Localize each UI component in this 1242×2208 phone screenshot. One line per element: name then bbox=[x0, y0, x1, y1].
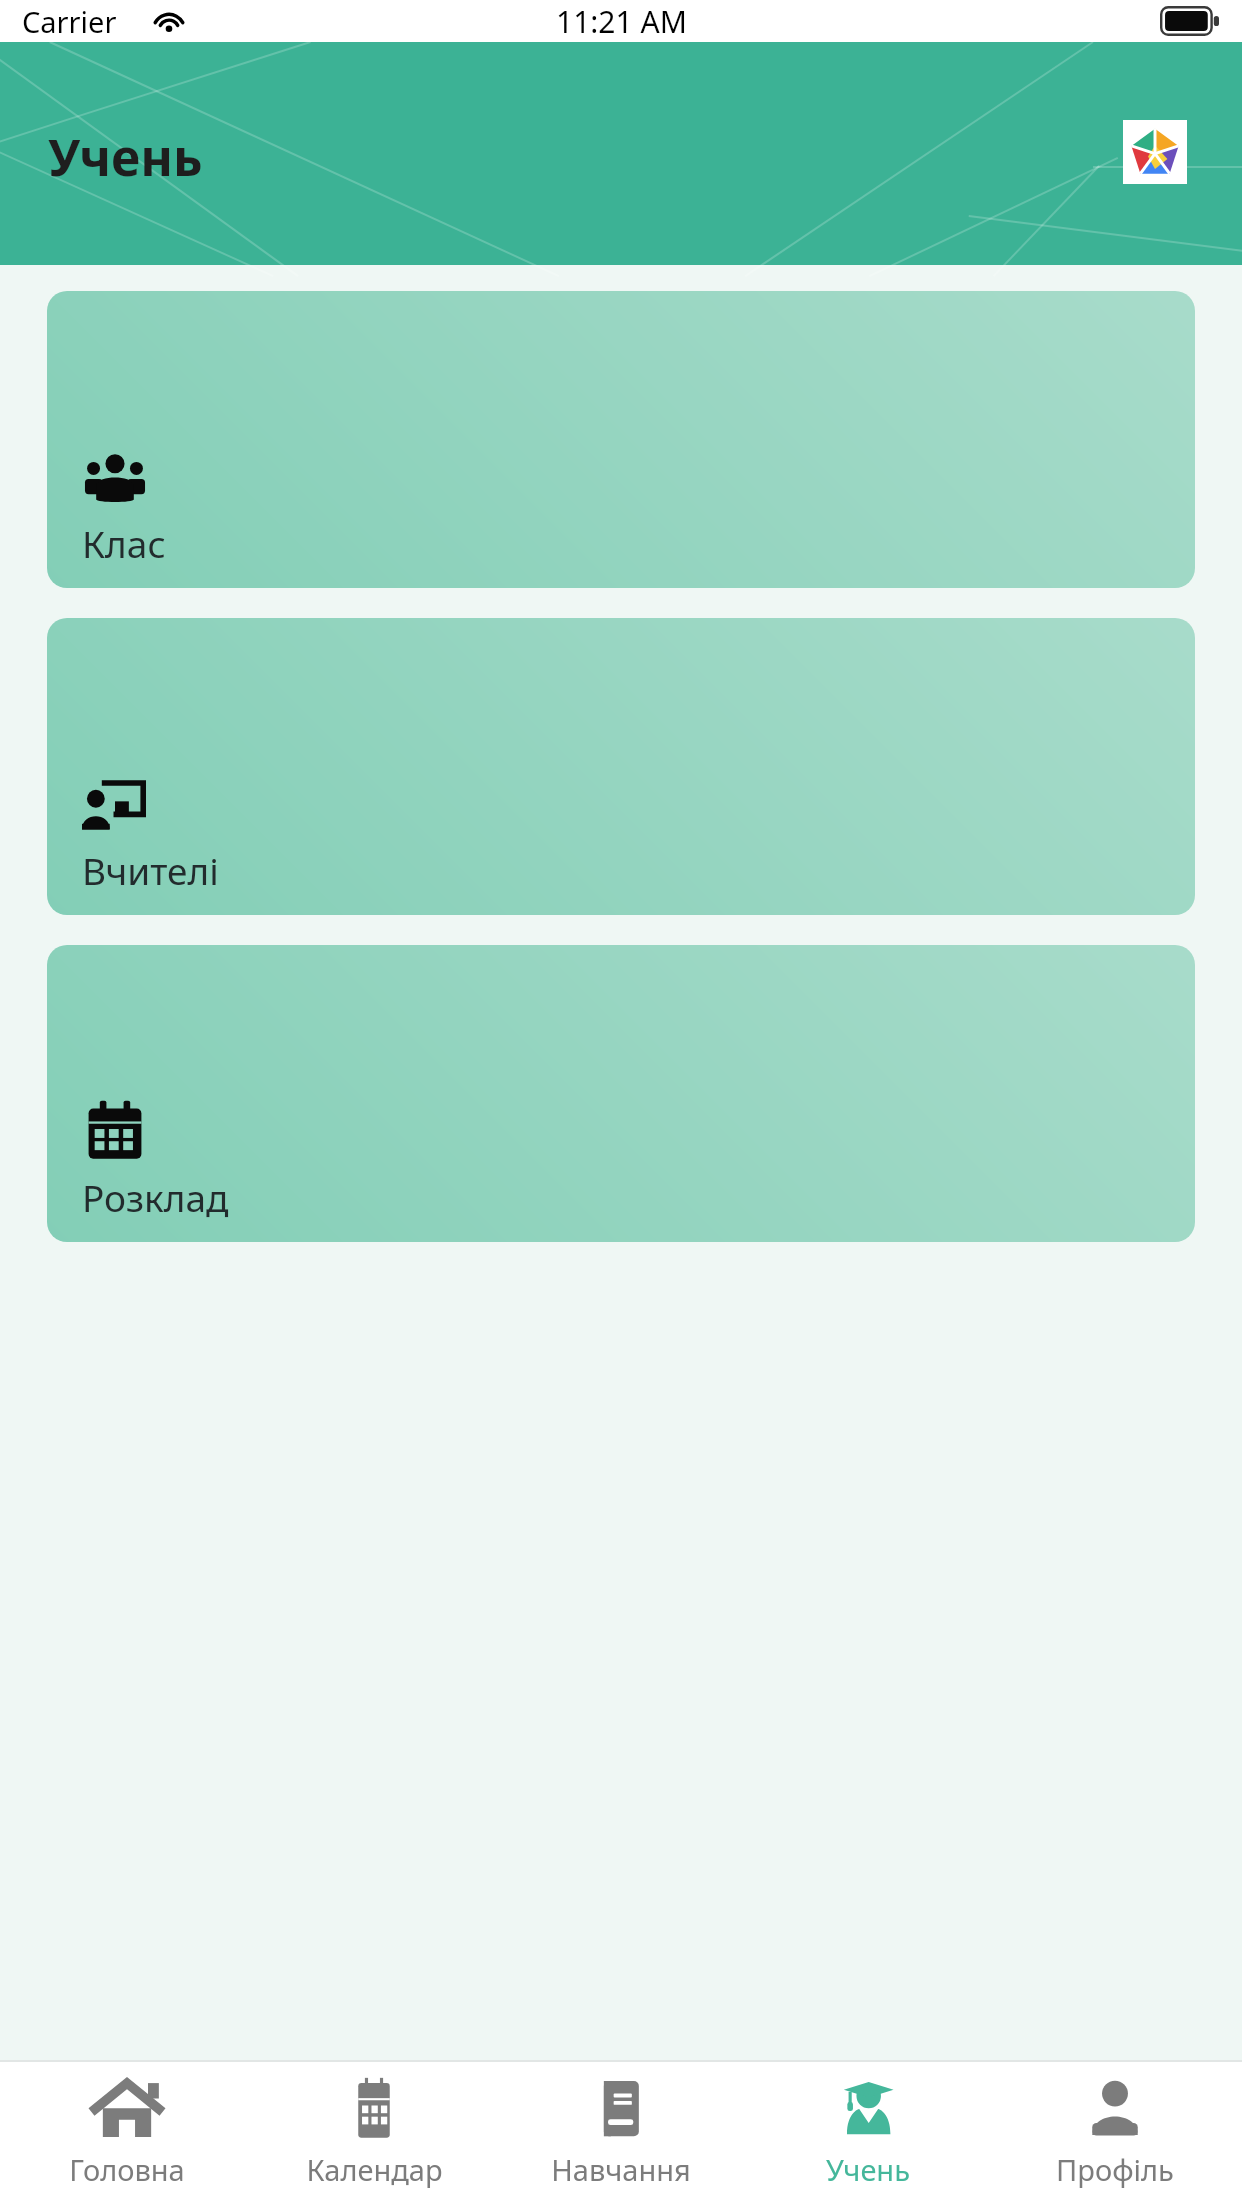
button[interactable]: Головна bbox=[7, 2074, 247, 2208]
staticText: Профіль bbox=[1056, 2150, 1174, 2189]
button[interactable]: Навчання bbox=[501, 2074, 741, 2208]
button[interactable]: Клас bbox=[47, 291, 1195, 588]
staticText: Календар bbox=[306, 2150, 443, 2189]
staticText: Carrier bbox=[22, 2, 117, 41]
staticText: Учень bbox=[826, 2150, 910, 2189]
button[interactable]: App logo bbox=[1123, 120, 1187, 184]
button[interactable]: Розклад bbox=[47, 945, 1195, 1242]
staticText: Учень bbox=[48, 123, 203, 191]
staticText: Навчання bbox=[551, 2150, 691, 2189]
staticText: Розклад bbox=[82, 1172, 229, 1222]
staticText: 11:21 AM bbox=[556, 1, 687, 42]
button[interactable]: Профіль bbox=[995, 2074, 1235, 2208]
button[interactable]: Календар bbox=[254, 2074, 494, 2208]
button[interactable]: Учень bbox=[748, 2074, 988, 2208]
staticText: Вчителі bbox=[82, 845, 219, 895]
staticText: Головна bbox=[69, 2150, 185, 2189]
button[interactable]: Вчителі bbox=[47, 618, 1195, 915]
staticText: Клас bbox=[82, 518, 166, 568]
